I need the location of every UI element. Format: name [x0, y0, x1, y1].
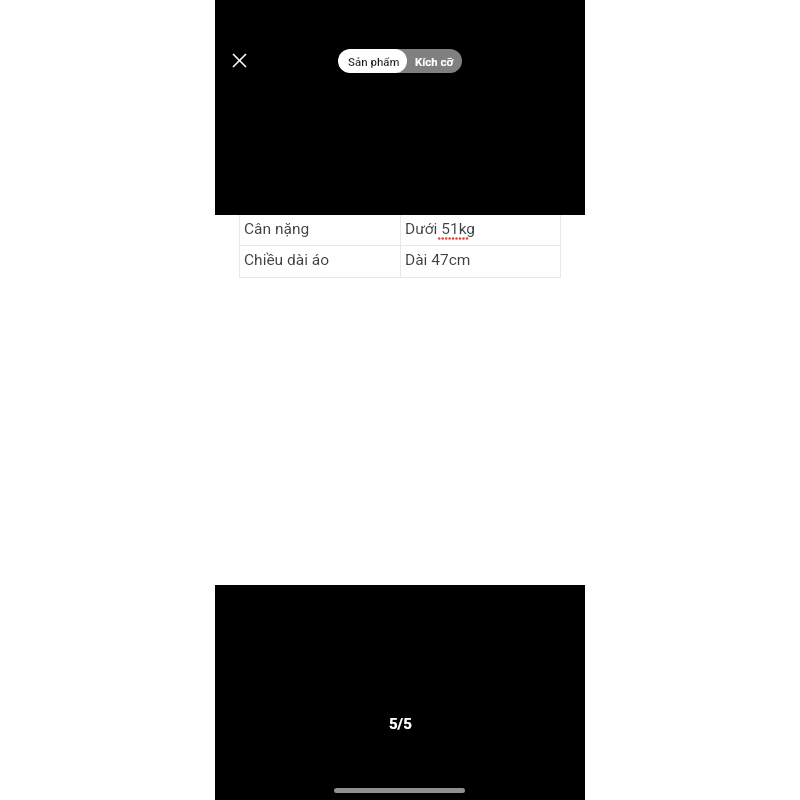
staticText: Cân nặng — [244, 220, 310, 238]
staticText: Sản phẩm — [348, 55, 400, 68]
staticText: Chiều dài áo — [244, 251, 330, 269]
staticText: Kích cỡ — [415, 55, 454, 68]
button[interactable]: Cân nặng — [239, 215, 561, 245]
button[interactable]: Kích cỡ — [407, 49, 462, 73]
button[interactable]: Close — [224, 45, 254, 75]
button[interactable]: Chiều dài áo — [239, 246, 561, 277]
staticText: Dưới 51kg — [405, 220, 476, 238]
staticText: 5/5 — [389, 715, 412, 733]
button[interactable]: Sản phẩm — [338, 49, 407, 73]
staticText: Dài 47cm — [405, 251, 471, 269]
